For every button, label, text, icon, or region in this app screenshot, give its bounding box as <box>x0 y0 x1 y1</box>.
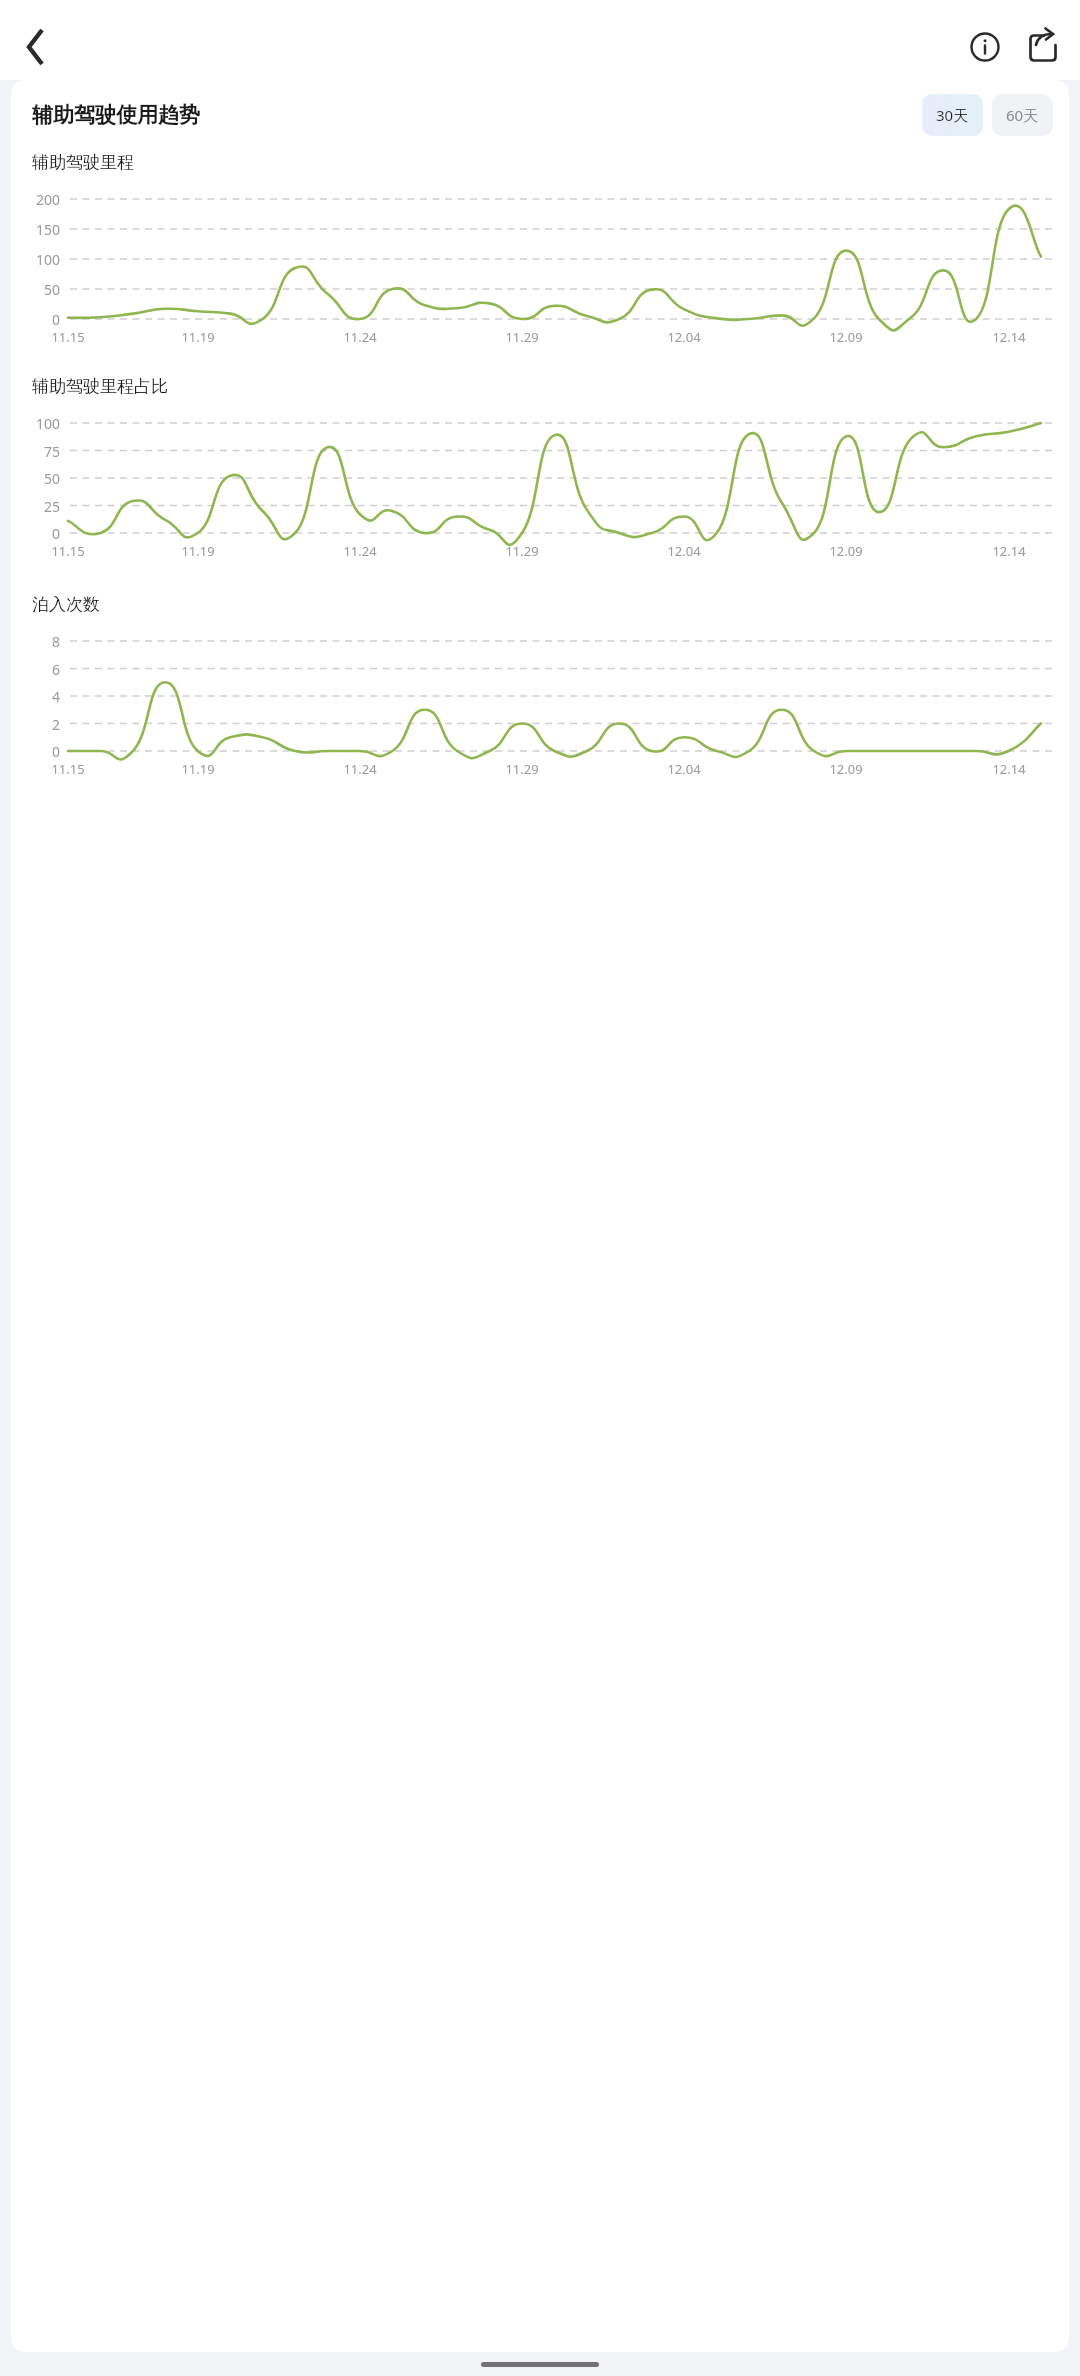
staticText: 11.19 <box>181 542 215 560</box>
staticText: 2 <box>52 715 61 733</box>
staticText: 11.29 <box>505 328 539 346</box>
button[interactable]: 60天 <box>992 94 1053 136</box>
staticText: 100 <box>36 414 61 432</box>
staticText: 11.24 <box>343 760 377 778</box>
staticText: 11.15 <box>51 328 85 346</box>
staticText: 12.09 <box>829 328 863 346</box>
button[interactable]: Back <box>12 23 60 71</box>
staticText: 12.14 <box>992 760 1026 778</box>
staticText: 200 <box>36 190 61 208</box>
staticText: 75 <box>44 442 61 460</box>
button[interactable]: Info <box>960 22 1010 72</box>
staticText: 50 <box>44 280 61 298</box>
staticText: 12.04 <box>667 328 701 346</box>
staticText: 辅助驾驶使用趋势 <box>32 102 200 128</box>
staticText: 6 <box>52 660 61 678</box>
staticText: 4 <box>52 687 61 705</box>
staticText: 11.24 <box>343 328 377 346</box>
staticText: 100 <box>36 250 61 268</box>
staticText: 辅助驾驶里程占比 <box>32 376 168 397</box>
staticText: 11.19 <box>181 328 215 346</box>
staticText: 50 <box>44 469 61 487</box>
button[interactable]: 30天 <box>922 94 983 136</box>
staticText: 泊入次数 <box>32 594 100 615</box>
staticText: 12.14 <box>992 542 1026 560</box>
staticText: 12.04 <box>667 760 701 778</box>
staticText: 11.29 <box>505 542 539 560</box>
staticText: 12.09 <box>829 760 863 778</box>
staticText: 辅助驾驶里程 <box>32 152 134 173</box>
staticText: 11.29 <box>505 760 539 778</box>
staticText: 25 <box>44 497 61 515</box>
staticText: 11.15 <box>51 760 85 778</box>
staticText: 0 <box>52 742 61 760</box>
staticText: 11.15 <box>51 542 85 560</box>
staticText: 150 <box>36 220 61 238</box>
staticText: 11.24 <box>343 542 377 560</box>
staticText: 60天 <box>1006 105 1039 125</box>
staticText: 12.09 <box>829 542 863 560</box>
button[interactable]: Share <box>1018 22 1068 72</box>
staticText: 11.19 <box>181 760 215 778</box>
staticText: 12.14 <box>992 328 1026 346</box>
staticText: 8 <box>52 632 61 650</box>
staticText: 0 <box>52 310 61 328</box>
staticText: 12.04 <box>667 542 701 560</box>
staticText: 30天 <box>936 105 969 125</box>
staticText: 0 <box>52 524 61 542</box>
